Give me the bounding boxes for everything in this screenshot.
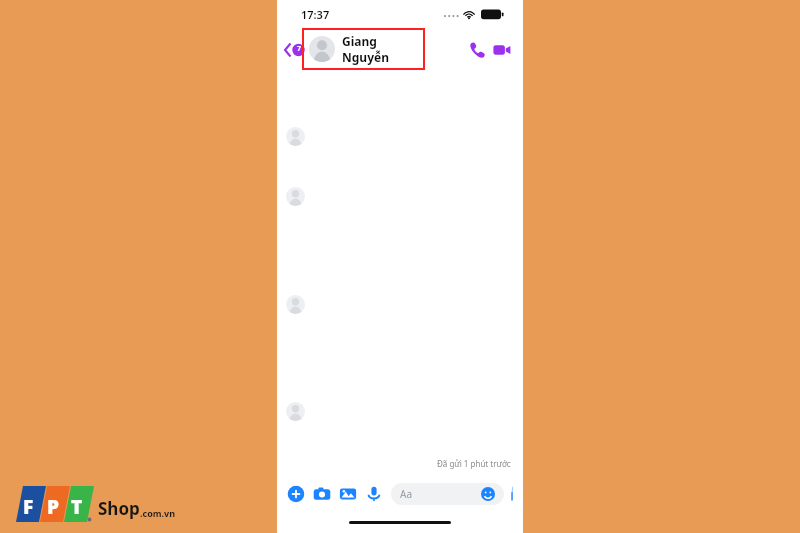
staticText: Giang Nguyễn bbox=[342, 33, 424, 65]
staticText: 7 bbox=[296, 44, 302, 54]
staticText: P bbox=[47, 494, 60, 520]
staticText: Aa bbox=[400, 487, 412, 501]
button[interactable]: Giang Nguyễn bbox=[303, 29, 424, 69]
staticText: F bbox=[23, 494, 34, 520]
staticText: 17:37 bbox=[301, 7, 330, 22]
staticText: Shop bbox=[98, 497, 140, 520]
button[interactable]: Camera bbox=[313, 485, 331, 503]
button[interactable]: Add bbox=[287, 485, 305, 503]
staticText: T bbox=[71, 494, 83, 520]
button[interactable]: Back bbox=[280, 37, 310, 63]
button[interactable]: Voice call bbox=[465, 38, 489, 62]
button[interactable]: Video call bbox=[490, 38, 514, 62]
button[interactable]: Like bbox=[511, 485, 513, 503]
button[interactable]: Aa bbox=[391, 483, 504, 505]
button[interactable]: Gallery bbox=[339, 485, 357, 503]
staticText: Đã gửi 1 phút trước bbox=[437, 458, 511, 469]
button[interactable]: Voice message bbox=[365, 485, 383, 503]
staticText: .com.vn bbox=[140, 507, 176, 519]
